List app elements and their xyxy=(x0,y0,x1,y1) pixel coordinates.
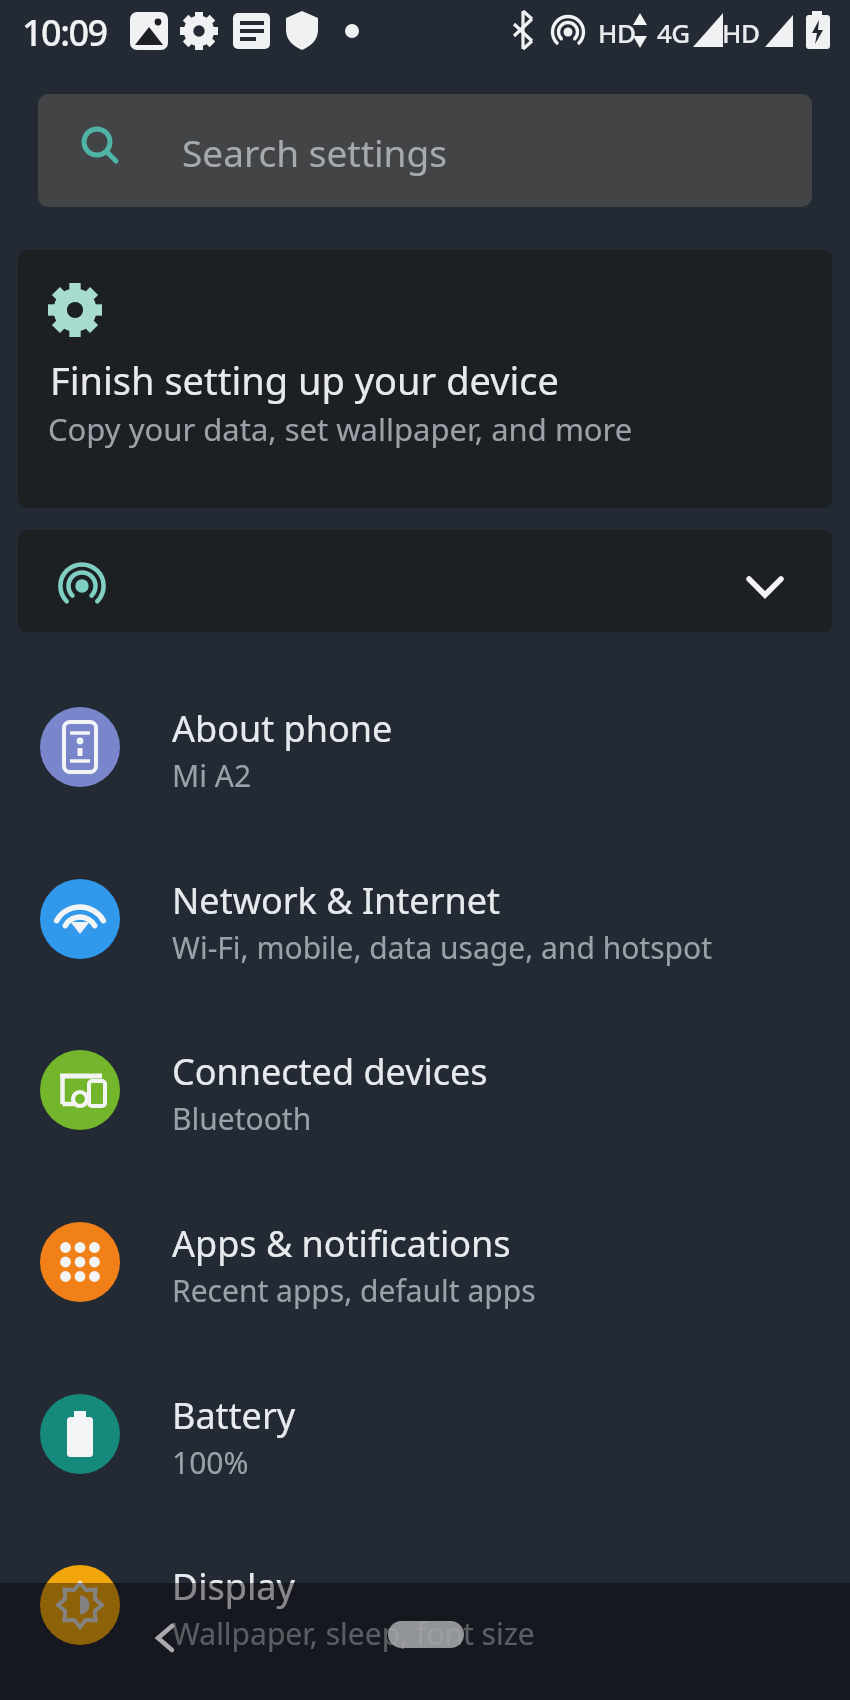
staticText: Wi-Fi, mobile, data usage, and hotspot xyxy=(172,927,712,968)
staticText: Finish setting up your device xyxy=(50,354,559,406)
staticText: Recent apps, default apps xyxy=(172,1270,536,1311)
staticText: Copy your data, set wallpaper, and more xyxy=(48,408,633,450)
staticText: Wallpaper, sleep, font size xyxy=(172,1613,535,1654)
button[interactable]: Display xyxy=(0,1519,850,1691)
button[interactable]: Finish setting up your device xyxy=(18,250,832,508)
staticText: Mi A2 xyxy=(172,755,252,796)
staticText: Bluetooth xyxy=(172,1098,312,1139)
button[interactable]: Connected devices xyxy=(0,1004,850,1176)
button[interactable]: Battery xyxy=(0,1348,850,1520)
staticText: Apps & notifications xyxy=(172,1219,511,1268)
staticText: Network & Internet xyxy=(172,876,501,925)
staticText: Search settings xyxy=(182,127,447,177)
staticText: 100% xyxy=(172,1442,249,1483)
staticText: Display xyxy=(172,1562,295,1611)
staticText: HD xyxy=(598,15,636,50)
staticText: HD xyxy=(722,15,760,50)
staticText: About phone xyxy=(172,704,393,753)
staticText: 4G xyxy=(657,15,690,50)
button[interactable]: About phone xyxy=(0,661,850,833)
button[interactable]: Search settings xyxy=(38,94,812,207)
staticText: Connected devices xyxy=(172,1047,488,1096)
staticText: Battery xyxy=(172,1391,296,1440)
button[interactable]: Network & Internet xyxy=(0,833,850,1005)
button[interactable] xyxy=(18,530,832,632)
staticText: 10:09 xyxy=(22,8,107,57)
button[interactable]: Apps & notifications xyxy=(0,1176,850,1348)
